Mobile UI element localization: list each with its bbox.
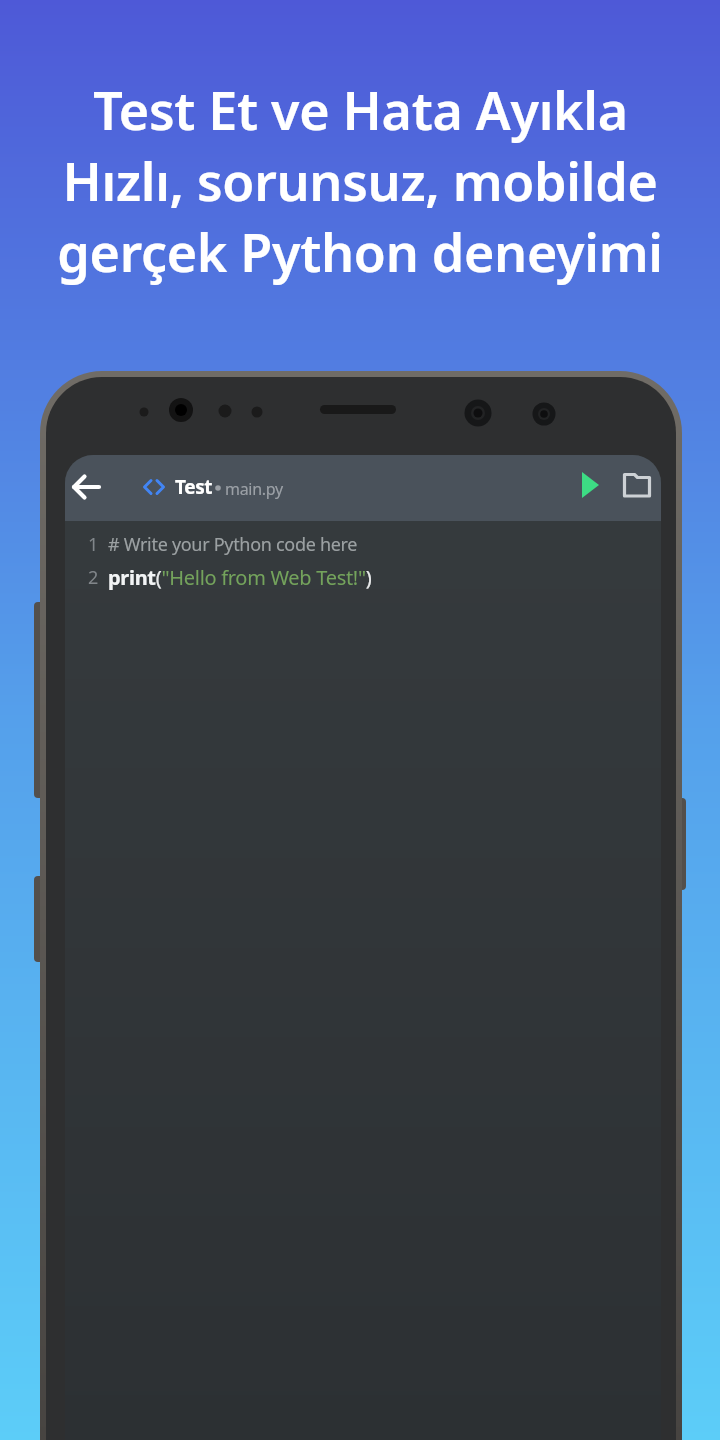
staticText: Hızlı, sorunsuz, mobilde	[62, 145, 658, 216]
button[interactable]	[614, 465, 660, 511]
staticText: main.py	[225, 478, 283, 500]
staticText: print("Hello from Web Test!")	[108, 564, 372, 591]
button[interactable]	[65, 464, 111, 510]
button[interactable]	[568, 465, 614, 511]
staticText: Test	[175, 474, 213, 500]
staticText: gerçek Python deneyimi	[57, 216, 663, 287]
staticText: # Write your Python code here	[108, 532, 358, 557]
staticText: 2	[88, 565, 98, 590]
staticText: 1	[88, 532, 98, 557]
staticText: Test Et ve Hata Ayıkla	[93, 74, 628, 145]
